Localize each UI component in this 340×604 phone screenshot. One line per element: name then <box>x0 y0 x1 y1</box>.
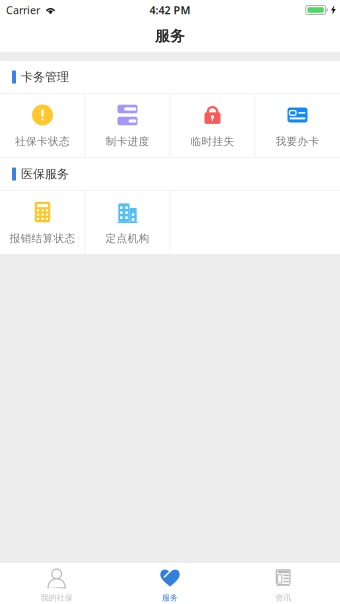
staticText: 我要办卡 <box>275 135 319 148</box>
staticText: 4:42 PM <box>149 3 190 17</box>
staticText: 临时挂失 <box>190 135 234 148</box>
staticText: 我的社保 <box>41 593 73 603</box>
staticText: 报销结算状态 <box>9 232 75 245</box>
button[interactable]: 资讯 <box>227 563 340 604</box>
staticText: 服务 <box>162 593 178 603</box>
staticText: Carrier <box>6 3 40 17</box>
staticText: 服务 <box>155 27 185 45</box>
button[interactable]: 我要办卡 <box>255 94 340 157</box>
button[interactable]: 报销结算状态 <box>0 191 85 254</box>
staticText: 资讯 <box>275 593 291 603</box>
button[interactable]: 服务 <box>113 563 227 604</box>
staticText: 社保卡状态 <box>15 135 70 148</box>
button[interactable]: 定点机构 <box>85 191 170 254</box>
button[interactable]: 临时挂失 <box>170 94 255 157</box>
staticText: 卡务管理 <box>21 70 69 84</box>
button[interactable]: 制卡进度 <box>85 94 170 157</box>
staticText: 医保服务 <box>21 167 69 181</box>
staticText: 制卡进度 <box>105 135 149 148</box>
button[interactable]: 我的社保 <box>0 563 113 604</box>
button[interactable]: 社保卡状态 <box>0 94 85 157</box>
staticText: 定点机构 <box>105 232 149 245</box>
